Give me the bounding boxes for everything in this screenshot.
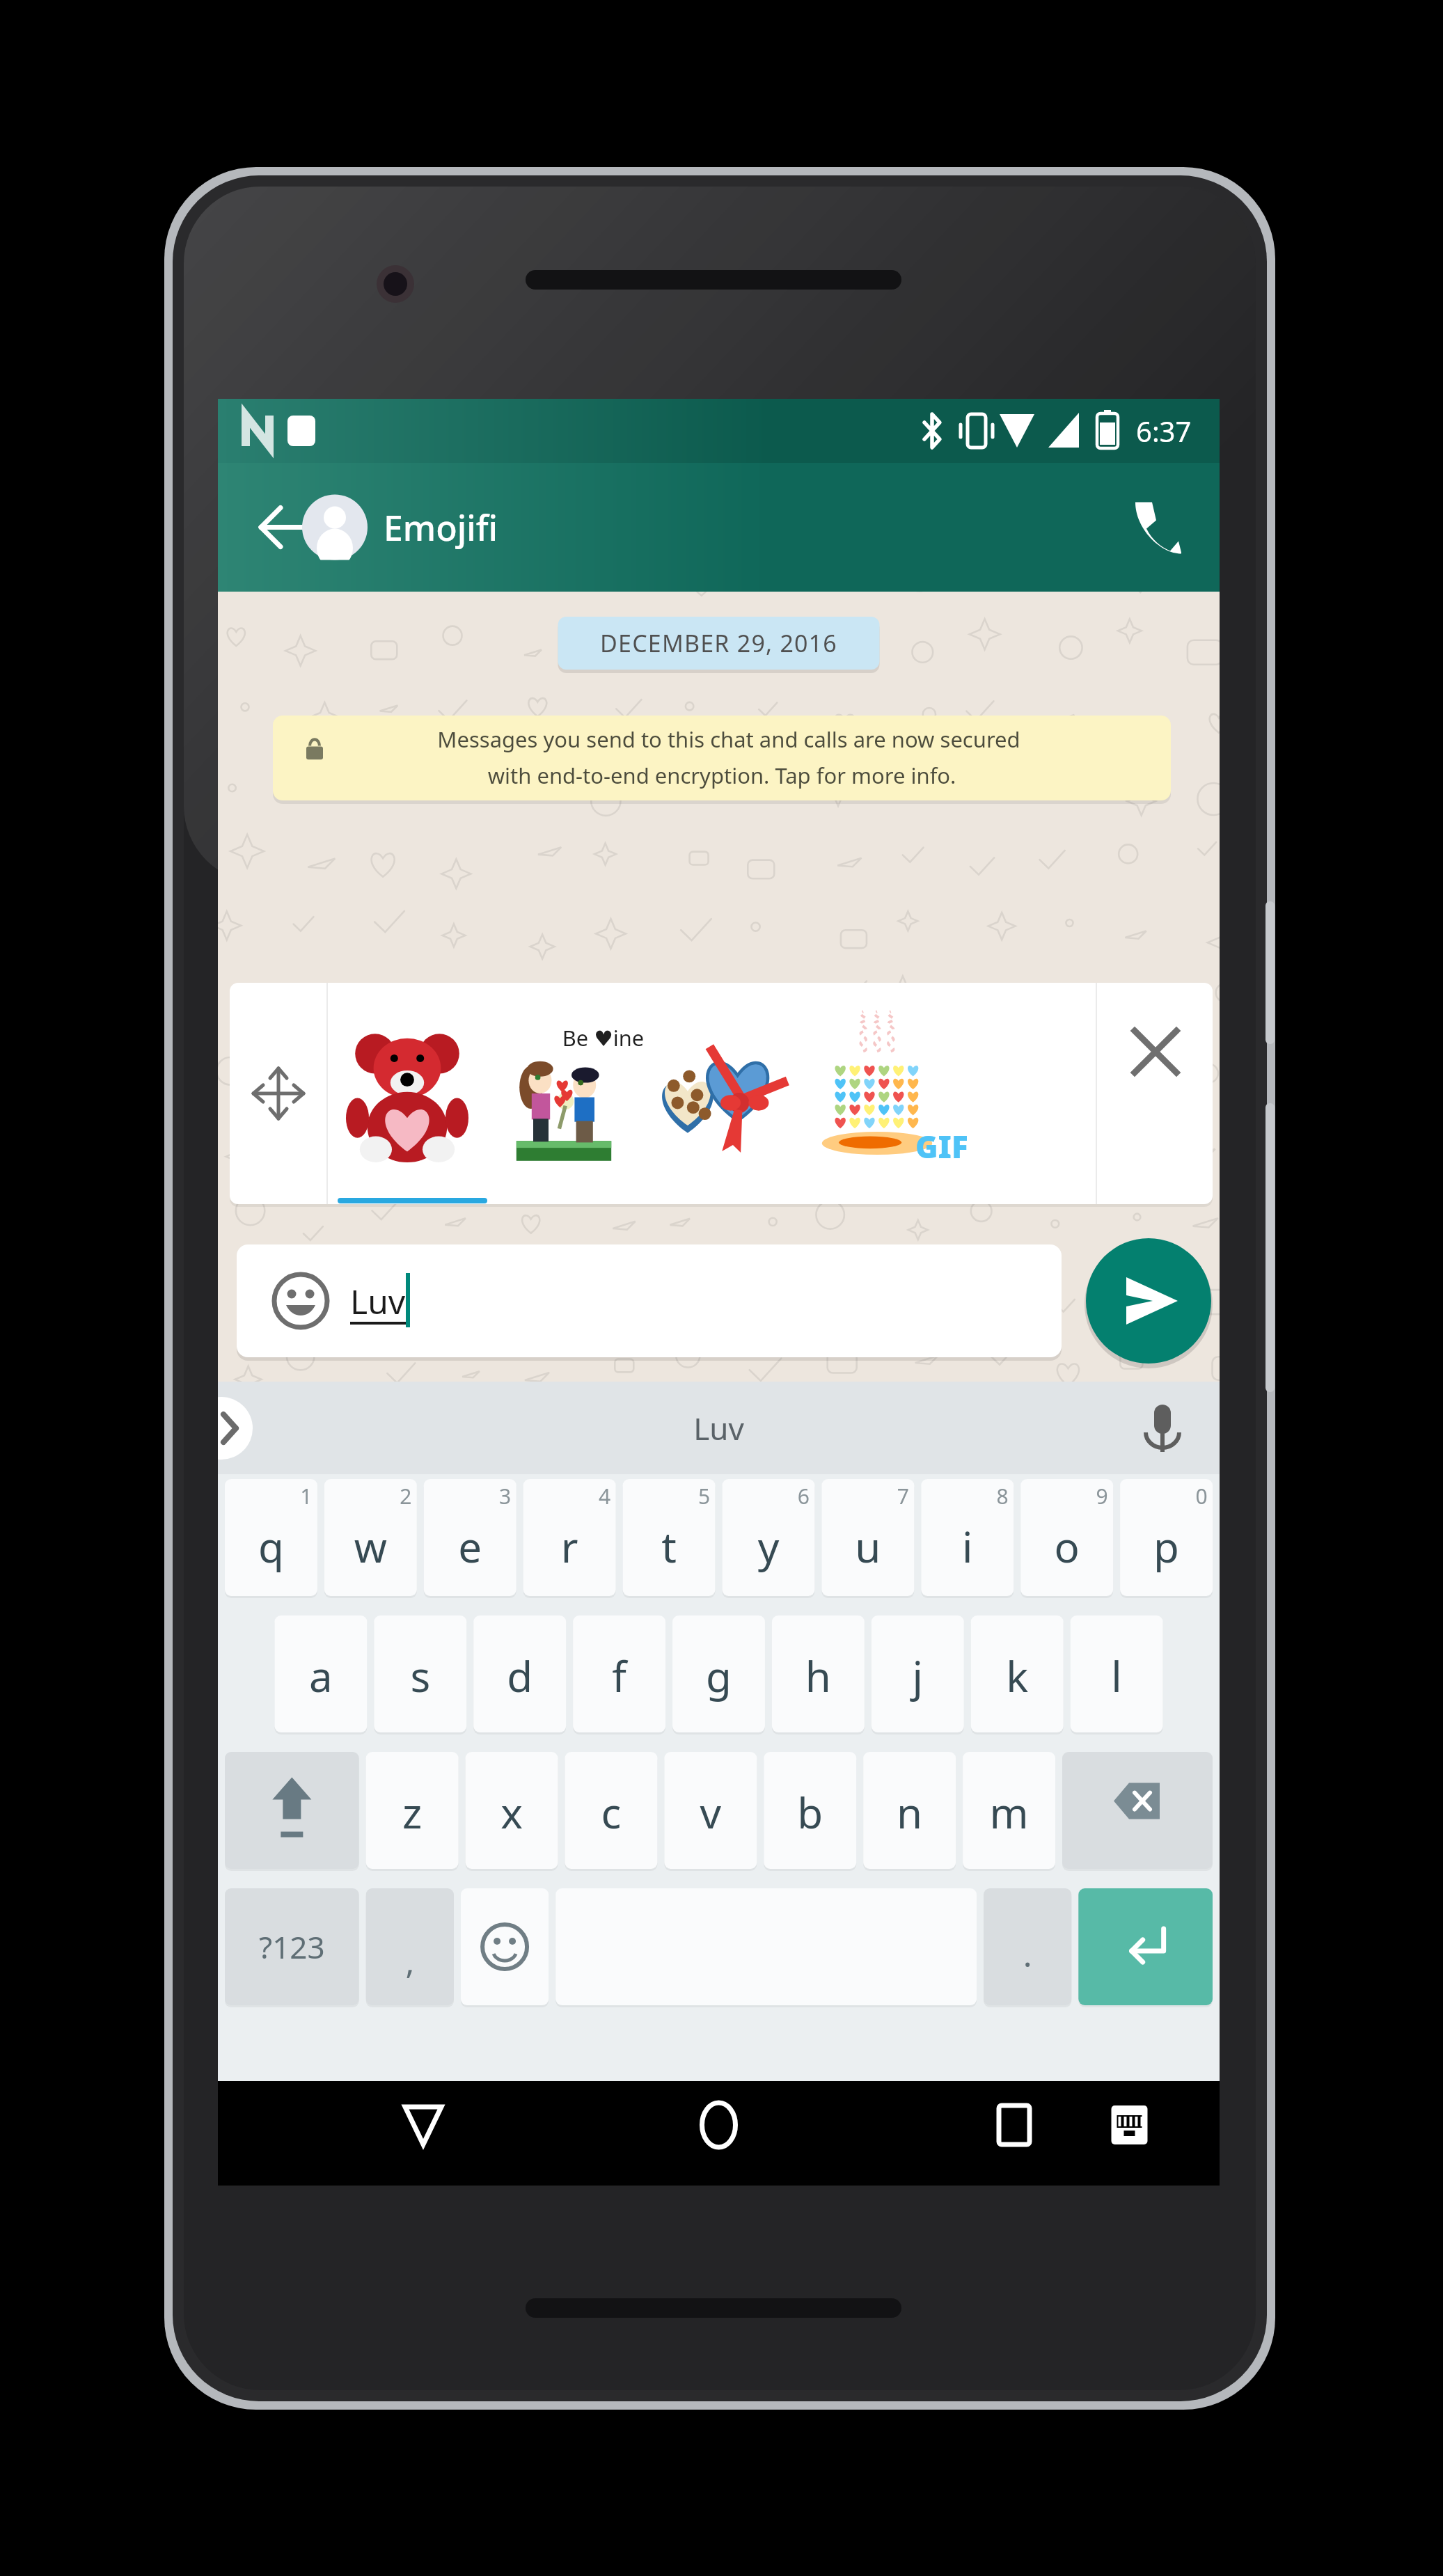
button[interactable]: Sticker GIF bbox=[801, 985, 957, 1204]
button[interactable]: Emojifi bbox=[296, 480, 588, 585]
button[interactable]: Navigation bar bbox=[230, 2081, 1218, 2186]
button[interactable]: Message input Luv bbox=[237, 1246, 1058, 1357]
button[interactable]: Back bbox=[230, 487, 306, 578]
button[interactable]: Send bbox=[1086, 1235, 1215, 1364]
button[interactable]: Sticker teddy bear bbox=[331, 985, 487, 1204]
other: WhatsApp chat Emojifi bbox=[0, 0, 1443, 2576]
button[interactable]: Close stickers bbox=[1100, 985, 1218, 1204]
button[interactable]: More options bbox=[1145, 480, 1215, 585]
button[interactable]: Sticker be mine bbox=[487, 985, 644, 1204]
button[interactable]: Sticker chocolate box bbox=[644, 985, 801, 1204]
